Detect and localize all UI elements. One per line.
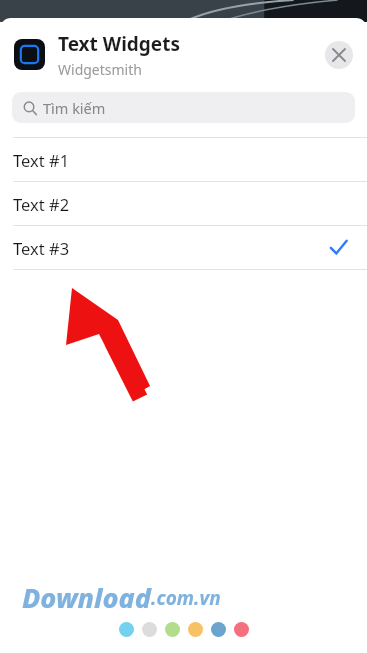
staticText: Widgetsmith: [58, 60, 142, 79]
staticText: Text #1: [13, 149, 70, 171]
button[interactable]: Text #1: [0, 138, 367, 181]
button[interactable]: Text #3: [0, 226, 367, 269]
staticText: Tìm kiếm: [43, 98, 106, 118]
staticText: Text #3: [13, 237, 70, 259]
staticText: Text Widgets: [58, 31, 180, 57]
staticText: .com.vn: [151, 585, 221, 611]
staticText: Download: [22, 579, 151, 616]
button[interactable]: Tìm kiếm: [12, 92, 355, 123]
button[interactable]: Close: [325, 41, 353, 69]
staticText: Text #2: [13, 193, 70, 215]
button[interactable]: Text #2: [0, 182, 367, 225]
